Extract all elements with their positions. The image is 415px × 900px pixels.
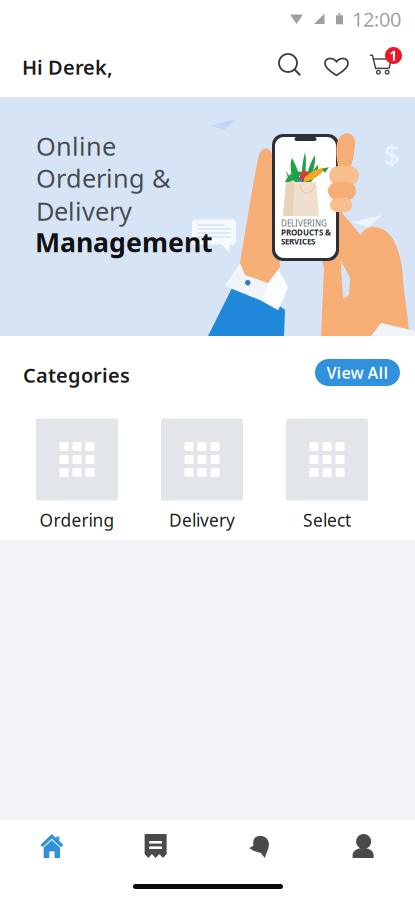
button[interactable]: Home bbox=[0, 820, 104, 872]
staticText: Ordering bbox=[39, 508, 114, 531]
staticText: DELIVERING bbox=[281, 218, 327, 229]
button[interactable]: Cart, 1 item bbox=[364, 42, 408, 86]
staticText: View All bbox=[326, 362, 388, 383]
staticText: SERVICES bbox=[281, 236, 315, 247]
staticText: 1 bbox=[389, 47, 397, 64]
button[interactable]: Profile bbox=[311, 820, 415, 872]
button[interactable]: Delivery bbox=[161, 418, 243, 531]
button[interactable]: Ordering bbox=[36, 418, 118, 531]
button[interactable]: Select bbox=[286, 418, 368, 531]
button[interactable]: Search bbox=[270, 48, 310, 86]
staticText: Online bbox=[36, 129, 116, 163]
staticText: Hi Derek, bbox=[22, 54, 113, 80]
staticText: Delivery bbox=[36, 194, 132, 228]
staticText: Ordering & bbox=[36, 161, 171, 195]
staticText: PRODUCTS & bbox=[281, 227, 331, 238]
staticText: Categories bbox=[23, 362, 130, 388]
button[interactable]: Orders bbox=[104, 820, 208, 872]
staticText: Select bbox=[303, 508, 351, 531]
staticText: $ bbox=[383, 134, 400, 173]
button[interactable]: Favourites bbox=[318, 48, 358, 86]
button[interactable]: Notifications bbox=[207, 820, 311, 872]
button[interactable]: View All bbox=[315, 359, 400, 386]
staticText: 12:00 bbox=[352, 6, 401, 32]
staticText: Management bbox=[35, 224, 213, 260]
staticText: Delivery bbox=[169, 508, 235, 531]
